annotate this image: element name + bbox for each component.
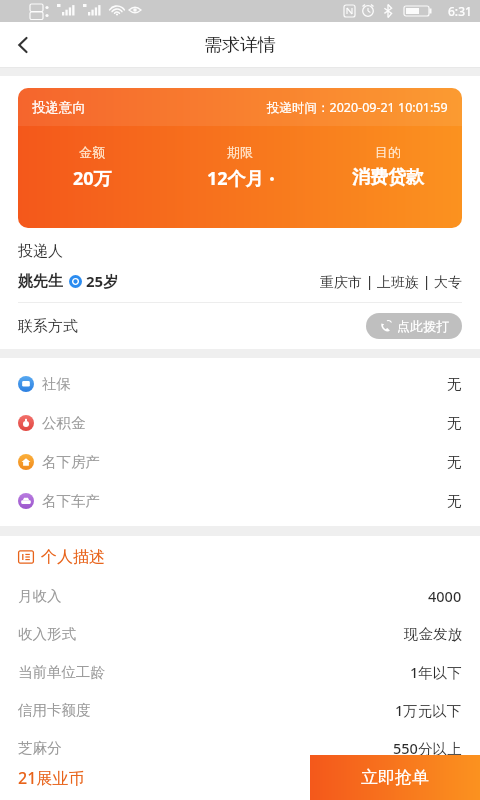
- staticText: 名下房产: [42, 453, 100, 471]
- button[interactable]: 投递意向: [18, 88, 462, 228]
- staticText: 个人描述: [41, 547, 105, 567]
- button[interactable]: 名下房产: [0, 442, 480, 481]
- button[interactable]: Back: [0, 22, 46, 68]
- staticText: 目的: [375, 144, 401, 160]
- staticText: 姚先生: [18, 272, 63, 291]
- staticText: 投递时间：2020-09-21 10:01:59: [267, 99, 448, 116]
- staticText: 1年以下: [410, 662, 462, 682]
- staticText: 当前单位工龄: [18, 663, 105, 681]
- staticText: 芝麻分: [18, 739, 62, 757]
- staticText: 无: [447, 414, 462, 432]
- staticText: 现金发放: [404, 625, 462, 643]
- staticText: 月收入: [18, 587, 62, 605]
- staticText: 6:31: [448, 3, 472, 19]
- staticText: 收入形式: [18, 625, 76, 643]
- staticText: 21展业币: [18, 767, 85, 789]
- button[interactable]: 公积金: [0, 403, 480, 442]
- staticText: 金额: [79, 144, 105, 160]
- staticText: 社保: [42, 375, 71, 393]
- staticText: 期限: [227, 144, 253, 160]
- staticText: 名下车产: [42, 492, 100, 510]
- staticText: 公积金: [42, 414, 86, 432]
- button[interactable]: 社保: [0, 364, 480, 403]
- staticText: 12个月: [207, 166, 264, 191]
- staticText: 需求详情: [204, 34, 276, 57]
- staticText: 550分以上: [393, 738, 462, 758]
- button[interactable]: 21展业币: [0, 755, 310, 800]
- staticText: 消费贷款: [352, 166, 424, 189]
- staticText: 4000: [428, 586, 462, 606]
- staticText: 投递人: [18, 242, 63, 261]
- button[interactable]: 立即抢单: [310, 755, 480, 800]
- staticText: 无: [447, 375, 462, 393]
- staticText: 立即抢单: [361, 767, 429, 788]
- staticText: 20万: [73, 166, 112, 191]
- staticText: 无: [447, 453, 462, 471]
- staticText: 无: [447, 492, 462, 510]
- staticText: 25岁: [86, 271, 119, 291]
- button[interactable]: 点此拨打: [366, 313, 462, 339]
- button[interactable]: 名下车产: [0, 481, 480, 520]
- staticText: 重庆市 | 上班族 | 大专: [320, 272, 462, 291]
- staticText: 点此拨打: [397, 318, 449, 334]
- staticText: 联系方式: [18, 317, 78, 336]
- staticText: 1万元以下: [395, 700, 462, 720]
- staticText: 信用卡额度: [18, 701, 91, 719]
- staticText: 投递意向: [32, 99, 86, 116]
